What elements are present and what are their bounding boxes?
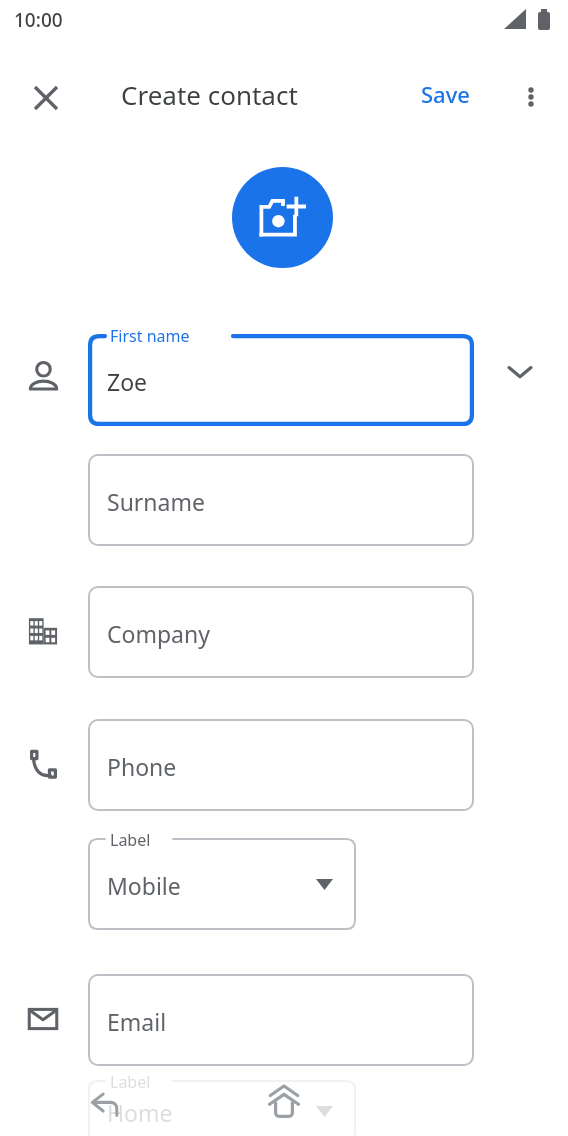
staticText: Phone xyxy=(107,751,177,782)
staticText: Company xyxy=(107,618,210,649)
button[interactable]: Expand name fields xyxy=(494,346,546,398)
staticText: Zoe xyxy=(107,366,148,397)
staticText: Home xyxy=(107,1097,173,1128)
staticText: 10:00 xyxy=(14,7,63,33)
button[interactable]: Add photo xyxy=(232,167,333,268)
button[interactable]: Label xyxy=(88,1080,356,1136)
button[interactable]: Label xyxy=(88,838,356,930)
staticText: Mobile xyxy=(107,870,181,901)
staticText: Create contact xyxy=(121,77,298,112)
button[interactable]: Save xyxy=(410,72,481,116)
button[interactable]: Back xyxy=(78,1078,134,1134)
staticText: Label xyxy=(110,1071,151,1093)
staticText: Label xyxy=(110,829,151,851)
button[interactable]: Home xyxy=(256,1074,312,1130)
staticText: Surname xyxy=(107,486,205,517)
button[interactable]: Email xyxy=(88,974,474,1066)
staticText: Save xyxy=(421,79,470,109)
button[interactable]: First name xyxy=(88,334,474,426)
button[interactable]: Surname xyxy=(88,454,474,546)
button[interactable]: Close xyxy=(18,70,74,126)
staticText: First name xyxy=(110,325,190,347)
button[interactable]: Phone xyxy=(88,719,474,811)
button[interactable]: More options xyxy=(506,72,556,122)
button[interactable]: Company xyxy=(88,586,474,678)
staticText: Email xyxy=(107,1006,167,1037)
